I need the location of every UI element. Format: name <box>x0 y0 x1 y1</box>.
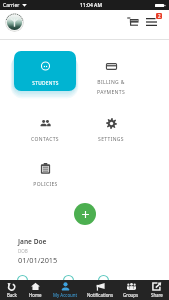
staticText: Carrier <box>3 2 20 9</box>
staticText: BILLING & PAYMENTS <box>97 79 125 95</box>
button[interactable]: Notifications <box>83 280 118 300</box>
staticText: STUDENTS <box>32 80 59 87</box>
button[interactable]: Share <box>144 280 169 300</box>
button[interactable]: STUDENTS <box>14 51 76 91</box>
button[interactable]: Menu <box>144 13 165 34</box>
staticText: 01/01/2015 <box>18 255 58 265</box>
button[interactable]: Back <box>0 280 23 300</box>
button[interactable]: Home <box>23 280 48 300</box>
button[interactable]: My Account <box>48 280 83 300</box>
staticText: SETTINGS <box>98 136 124 143</box>
staticText: Home <box>29 292 42 298</box>
staticText: DOB <box>18 248 28 254</box>
button[interactable]: Groups <box>118 280 144 300</box>
button[interactable]: POLICIES <box>14 162 76 202</box>
staticText: 2 <box>158 13 161 19</box>
button[interactable]: Add <box>74 203 96 225</box>
staticText: Back <box>7 292 17 298</box>
staticText: 11:04 AM <box>80 2 102 9</box>
button[interactable]: BILLING & PAYMENTS <box>80 60 142 100</box>
staticText: CONTACTS <box>31 136 59 143</box>
button[interactable]: Jane Doe <box>15 235 155 291</box>
button[interactable]: Action <box>98 275 109 286</box>
staticText: POLICIES <box>33 181 58 188</box>
staticText: Share <box>151 292 163 298</box>
staticText: Groups <box>123 292 139 298</box>
button[interactable]: SETTINGS <box>80 117 142 157</box>
staticText: Notifications <box>87 292 114 298</box>
button[interactable]: CONTACTS <box>14 117 76 157</box>
button[interactable]: Logo <box>5 13 24 32</box>
button[interactable]: Action <box>17 275 28 286</box>
button[interactable]: Cart <box>123 15 141 33</box>
staticText: My Account <box>53 292 78 298</box>
button[interactable]: Action <box>63 275 74 286</box>
staticText: Jane Doe <box>18 237 47 246</box>
